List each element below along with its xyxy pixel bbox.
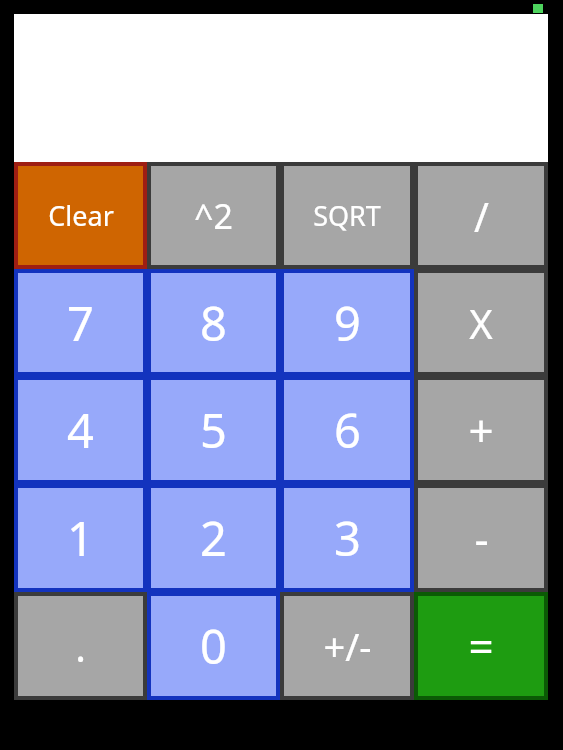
staticText: Clear <box>48 197 114 234</box>
button[interactable]: Square <box>151 166 276 265</box>
staticText: . <box>75 619 86 673</box>
staticText: 5 <box>200 398 227 462</box>
button[interactable]: 9 <box>284 273 410 372</box>
button[interactable]: 6 <box>284 380 410 480</box>
button[interactable]: 2 <box>151 488 276 588</box>
button[interactable]: Equals <box>418 596 544 696</box>
button[interactable]: Multiply <box>418 273 544 372</box>
button[interactable]: Minus <box>418 488 544 588</box>
staticText: 0 <box>200 614 227 678</box>
button[interactable]: Plus <box>418 380 544 480</box>
button[interactable]: 5 <box>151 380 276 480</box>
staticText: 6 <box>334 398 361 462</box>
button[interactable]: 8 <box>151 273 276 372</box>
button[interactable]: 4 <box>18 380 143 480</box>
staticText: 7 <box>67 291 94 355</box>
staticText: +/- <box>323 620 372 672</box>
staticText: 3 <box>334 506 361 570</box>
button[interactable]: Square root <box>284 166 410 265</box>
button[interactable]: 1 <box>18 488 143 588</box>
staticText: + <box>468 400 494 460</box>
staticText: X <box>469 296 493 350</box>
staticText: 8 <box>200 291 227 355</box>
button[interactable]: Sign change <box>284 596 410 696</box>
staticText: 1 <box>67 506 94 570</box>
staticText: / <box>474 189 489 243</box>
staticText: = <box>468 616 494 676</box>
button[interactable]: Clear <box>18 166 143 265</box>
staticText: 4 <box>67 398 94 462</box>
staticText: 2 <box>200 506 227 570</box>
button[interactable]: Divide <box>418 166 544 265</box>
staticText: 9 <box>334 291 361 355</box>
button[interactable]: 3 <box>284 488 410 588</box>
staticText: ^2 <box>194 193 233 239</box>
staticText: - <box>474 508 489 568</box>
button[interactable]: 7 <box>18 273 143 372</box>
button[interactable]: 0 <box>151 596 276 696</box>
staticText: SQRT <box>313 197 381 234</box>
button[interactable]: Decimal point <box>18 596 143 696</box>
